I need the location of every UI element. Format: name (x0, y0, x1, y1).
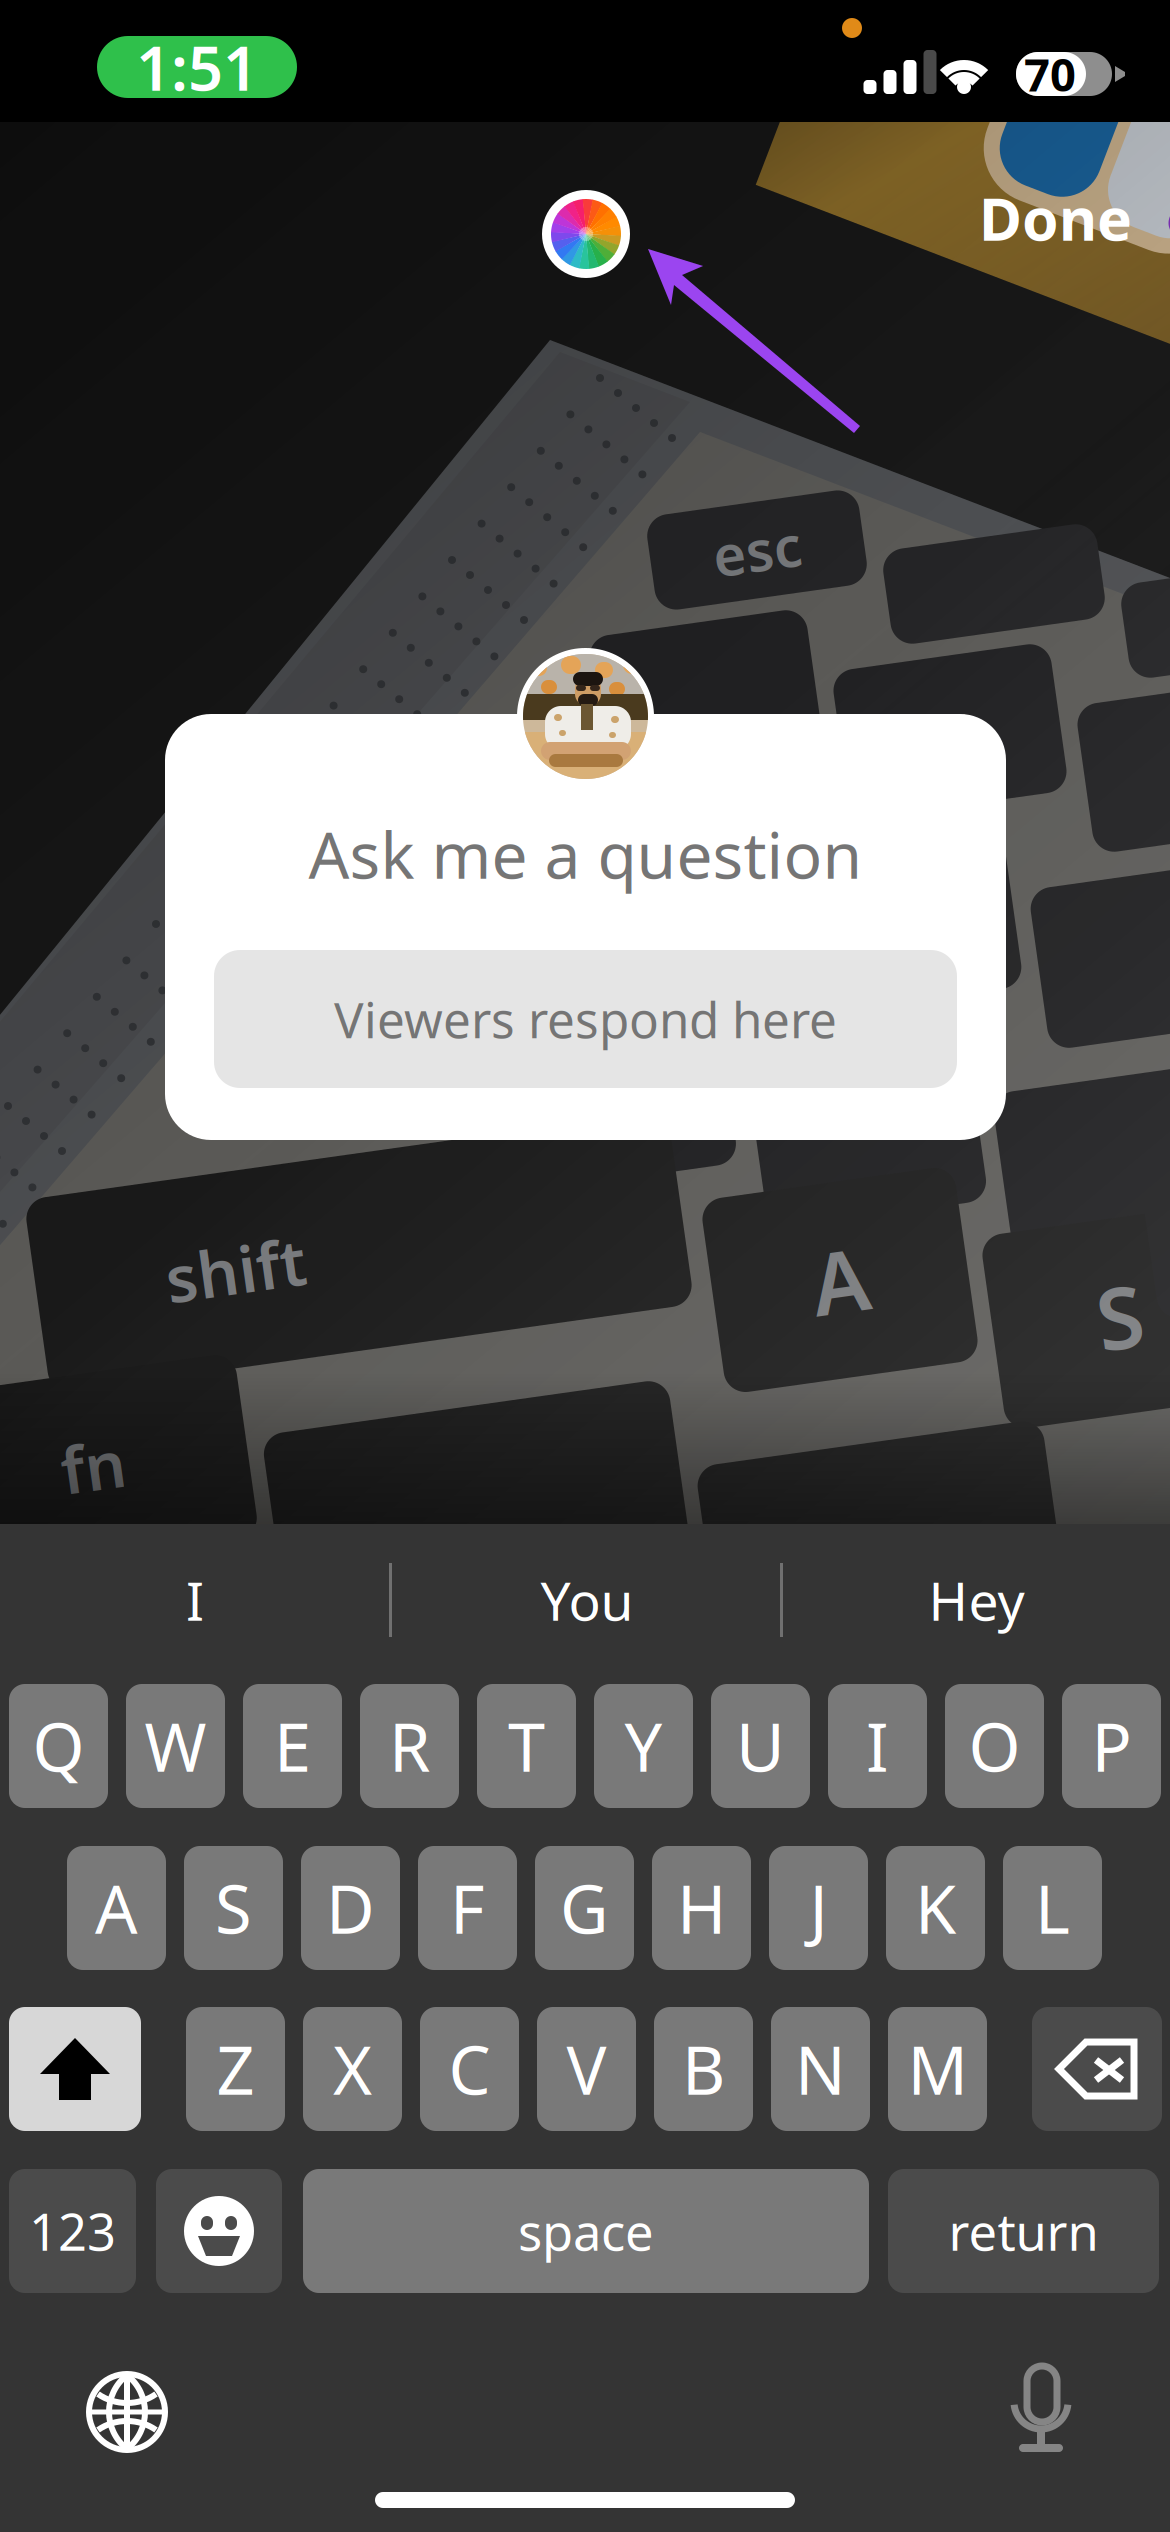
button[interactable]: space (303, 2169, 869, 2293)
staticText: Ask me a question (308, 811, 862, 896)
staticText: A (95, 1864, 138, 1952)
staticText: U (736, 1702, 785, 1790)
staticText: return (948, 2197, 1098, 2265)
button[interactable]: Next keyboard (87, 2372, 167, 2452)
staticText: R (389, 1702, 430, 1790)
button[interactable]: Dictation (1005, 2366, 1077, 2452)
button[interactable]: J (769, 1846, 868, 1970)
staticText: S (1096, 1259, 1143, 1373)
button[interactable]: Colour picker (542, 190, 630, 278)
staticText: J (809, 1864, 827, 1952)
staticText: N (795, 2025, 846, 2113)
staticText: G (560, 1864, 609, 1952)
staticText: 70 (1024, 44, 1076, 104)
button[interactable]: Emoji (156, 2169, 282, 2293)
staticText: esc (712, 513, 801, 587)
staticText: space (518, 2197, 654, 2265)
staticText: F1 (925, 701, 975, 761)
button[interactable]: Shift (9, 2007, 141, 2131)
staticText: S (215, 1864, 252, 1952)
staticText: C (448, 2025, 490, 2113)
staticText: M (907, 2025, 967, 2113)
button[interactable]: K (886, 1846, 985, 1970)
staticText: I (866, 1702, 889, 1790)
staticText: 123 (29, 2197, 116, 2265)
staticText: F (450, 1864, 485, 1952)
button[interactable]: F (418, 1846, 517, 1970)
staticText: shift (164, 1209, 305, 1294)
button[interactable]: A (67, 1846, 166, 1970)
staticText: E (274, 1702, 311, 1790)
staticText: 1:51 (136, 26, 258, 108)
staticText: P (1091, 1702, 1131, 1790)
button[interactable]: B (654, 2007, 753, 2131)
button[interactable]: S (184, 1846, 283, 1970)
staticText: W (144, 1702, 206, 1790)
button[interactable]: P (1062, 1684, 1161, 1808)
button[interactable]: O (945, 1684, 1044, 1808)
staticText: Viewers respond here (334, 986, 837, 1052)
button[interactable]: Y (594, 1684, 693, 1808)
staticText: You (540, 1565, 633, 1635)
staticText: H (677, 1864, 726, 1952)
button[interactable]: L (1003, 1846, 1102, 1970)
button[interactable]: Z (186, 2007, 285, 2131)
staticText: Z (216, 2025, 254, 2113)
button[interactable]: Done (902, 186, 1132, 250)
staticText: V (566, 2025, 606, 2113)
staticText: I (186, 1565, 204, 1635)
button[interactable]: 123 (9, 2169, 136, 2293)
button[interactable]: I (828, 1684, 927, 1808)
button[interactable]: I (0, 1540, 390, 1660)
staticText: O (968, 1702, 1020, 1790)
staticText: T (508, 1702, 545, 1790)
button[interactable]: return (888, 2169, 1159, 2293)
button[interactable]: V (537, 2007, 636, 2131)
staticText: fn (60, 1420, 125, 1505)
staticText: K (915, 1864, 956, 1952)
staticText: X (333, 2025, 372, 2113)
button[interactable]: W (126, 1684, 225, 1808)
staticText: L (1035, 1864, 1070, 1952)
button[interactable]: T (477, 1684, 576, 1808)
staticText: Y (624, 1702, 662, 1790)
button[interactable]: D (301, 1846, 400, 1970)
button[interactable]: E (243, 1684, 342, 1808)
button[interactable]: M (888, 2007, 987, 2131)
button[interactable]: Viewers respond here (214, 950, 957, 1088)
staticText: B (682, 2025, 725, 2113)
staticText: Hey (928, 1565, 1024, 1635)
button[interactable]: X (303, 2007, 402, 2131)
button[interactable]: G (535, 1846, 634, 1970)
button[interactable]: U (711, 1684, 810, 1808)
button[interactable]: N (771, 2007, 870, 2131)
button[interactable]: R (360, 1684, 459, 1808)
staticText: Done (979, 179, 1132, 257)
button[interactable]: C (420, 2007, 519, 2131)
button[interactable]: Hey (783, 1540, 1170, 1660)
button[interactable]: You (392, 1540, 782, 1660)
button[interactable]: Delete (1032, 2007, 1162, 2131)
staticText: D (326, 1864, 375, 1952)
staticText: A (811, 1223, 868, 1337)
button[interactable]: Q (9, 1684, 108, 1808)
button[interactable]: H (652, 1846, 751, 1970)
staticText: Q (32, 1702, 84, 1790)
